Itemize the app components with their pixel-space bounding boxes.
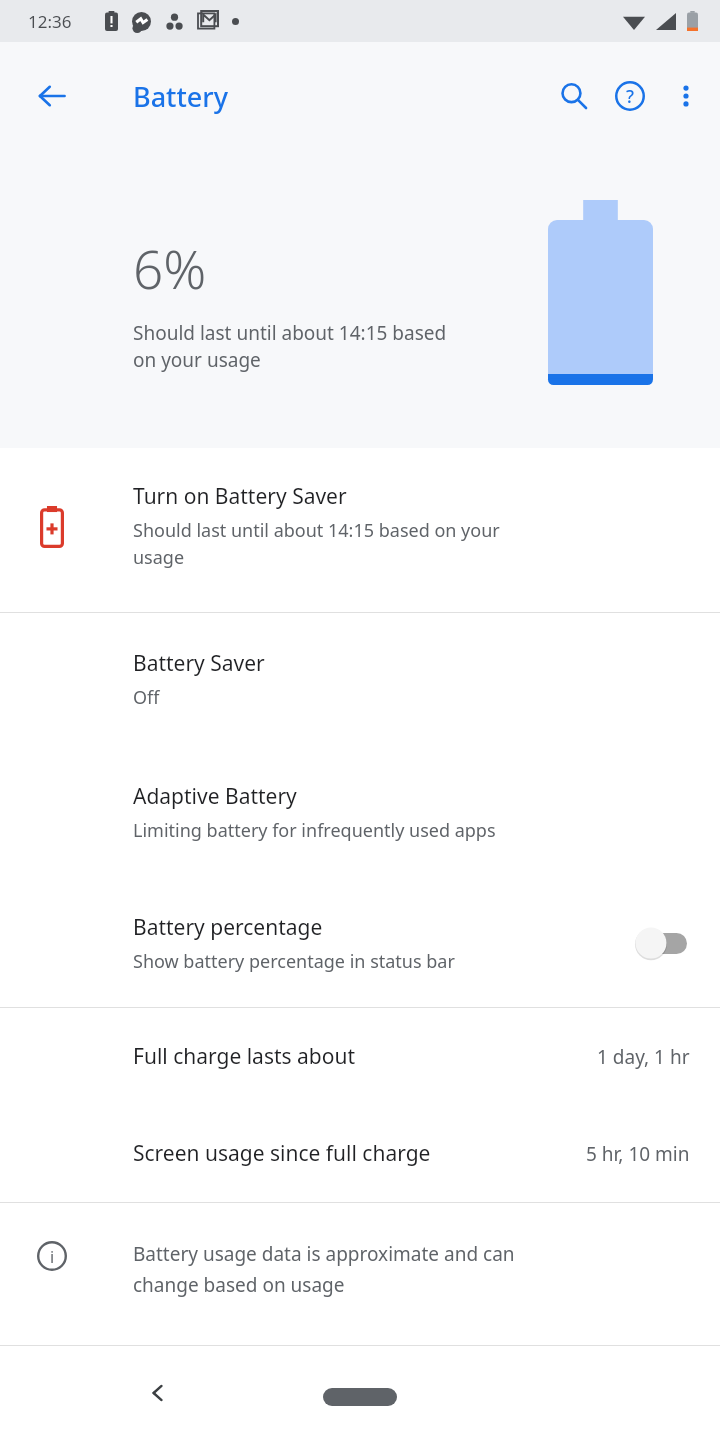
staticText: Show battery percentage in status bar: [133, 949, 455, 974]
button[interactable]: Adaptive Battery: [0, 746, 720, 879]
staticText: Off: [133, 685, 160, 710]
staticText: Adaptive Battery: [133, 782, 297, 811]
staticText: 1 day, 1 hr: [597, 1044, 690, 1070]
button[interactable]: Back: [128, 1363, 188, 1423]
staticText: Limiting battery for infrequently used a…: [133, 818, 496, 843]
staticText: 5 hr, 10 min: [586, 1141, 690, 1167]
button[interactable]: Battery Saver: [0, 613, 720, 746]
staticText: Battery Saver: [133, 649, 265, 678]
staticText: Battery usage data is approximate and ca…: [133, 1241, 515, 1297]
button[interactable]: More options: [658, 68, 714, 124]
button[interactable]: Full charge lasts about: [0, 1008, 720, 1105]
staticText: Battery: [133, 78, 228, 115]
staticText: Screen usage since full charge: [133, 1139, 431, 1168]
staticText: 6%: [133, 232, 207, 304]
staticText: ?: [626, 84, 635, 109]
staticText: i: [50, 1246, 55, 1268]
button[interactable]: Home: [323, 1388, 397, 1406]
button[interactable]: Screen usage since full charge: [0, 1105, 720, 1202]
staticText: 12:36: [28, 10, 72, 33]
button[interactable]: Back: [24, 68, 80, 124]
button[interactable]: Help: [602, 68, 658, 124]
button[interactable]: Search: [546, 68, 602, 124]
staticText: Should last until about 14:15 based on y…: [133, 320, 447, 373]
other: Battery percentage toggle: [634, 923, 690, 963]
button[interactable]: Turn on Battery Saver: [0, 448, 720, 612]
staticText: Battery percentage: [133, 913, 323, 942]
staticText: Turn on Battery Saver: [133, 482, 347, 511]
staticText: Should last until about 14:15 based on y…: [133, 518, 500, 569]
button[interactable]: Battery percentage: [0, 879, 720, 1007]
staticText: Full charge lasts about: [133, 1042, 356, 1071]
